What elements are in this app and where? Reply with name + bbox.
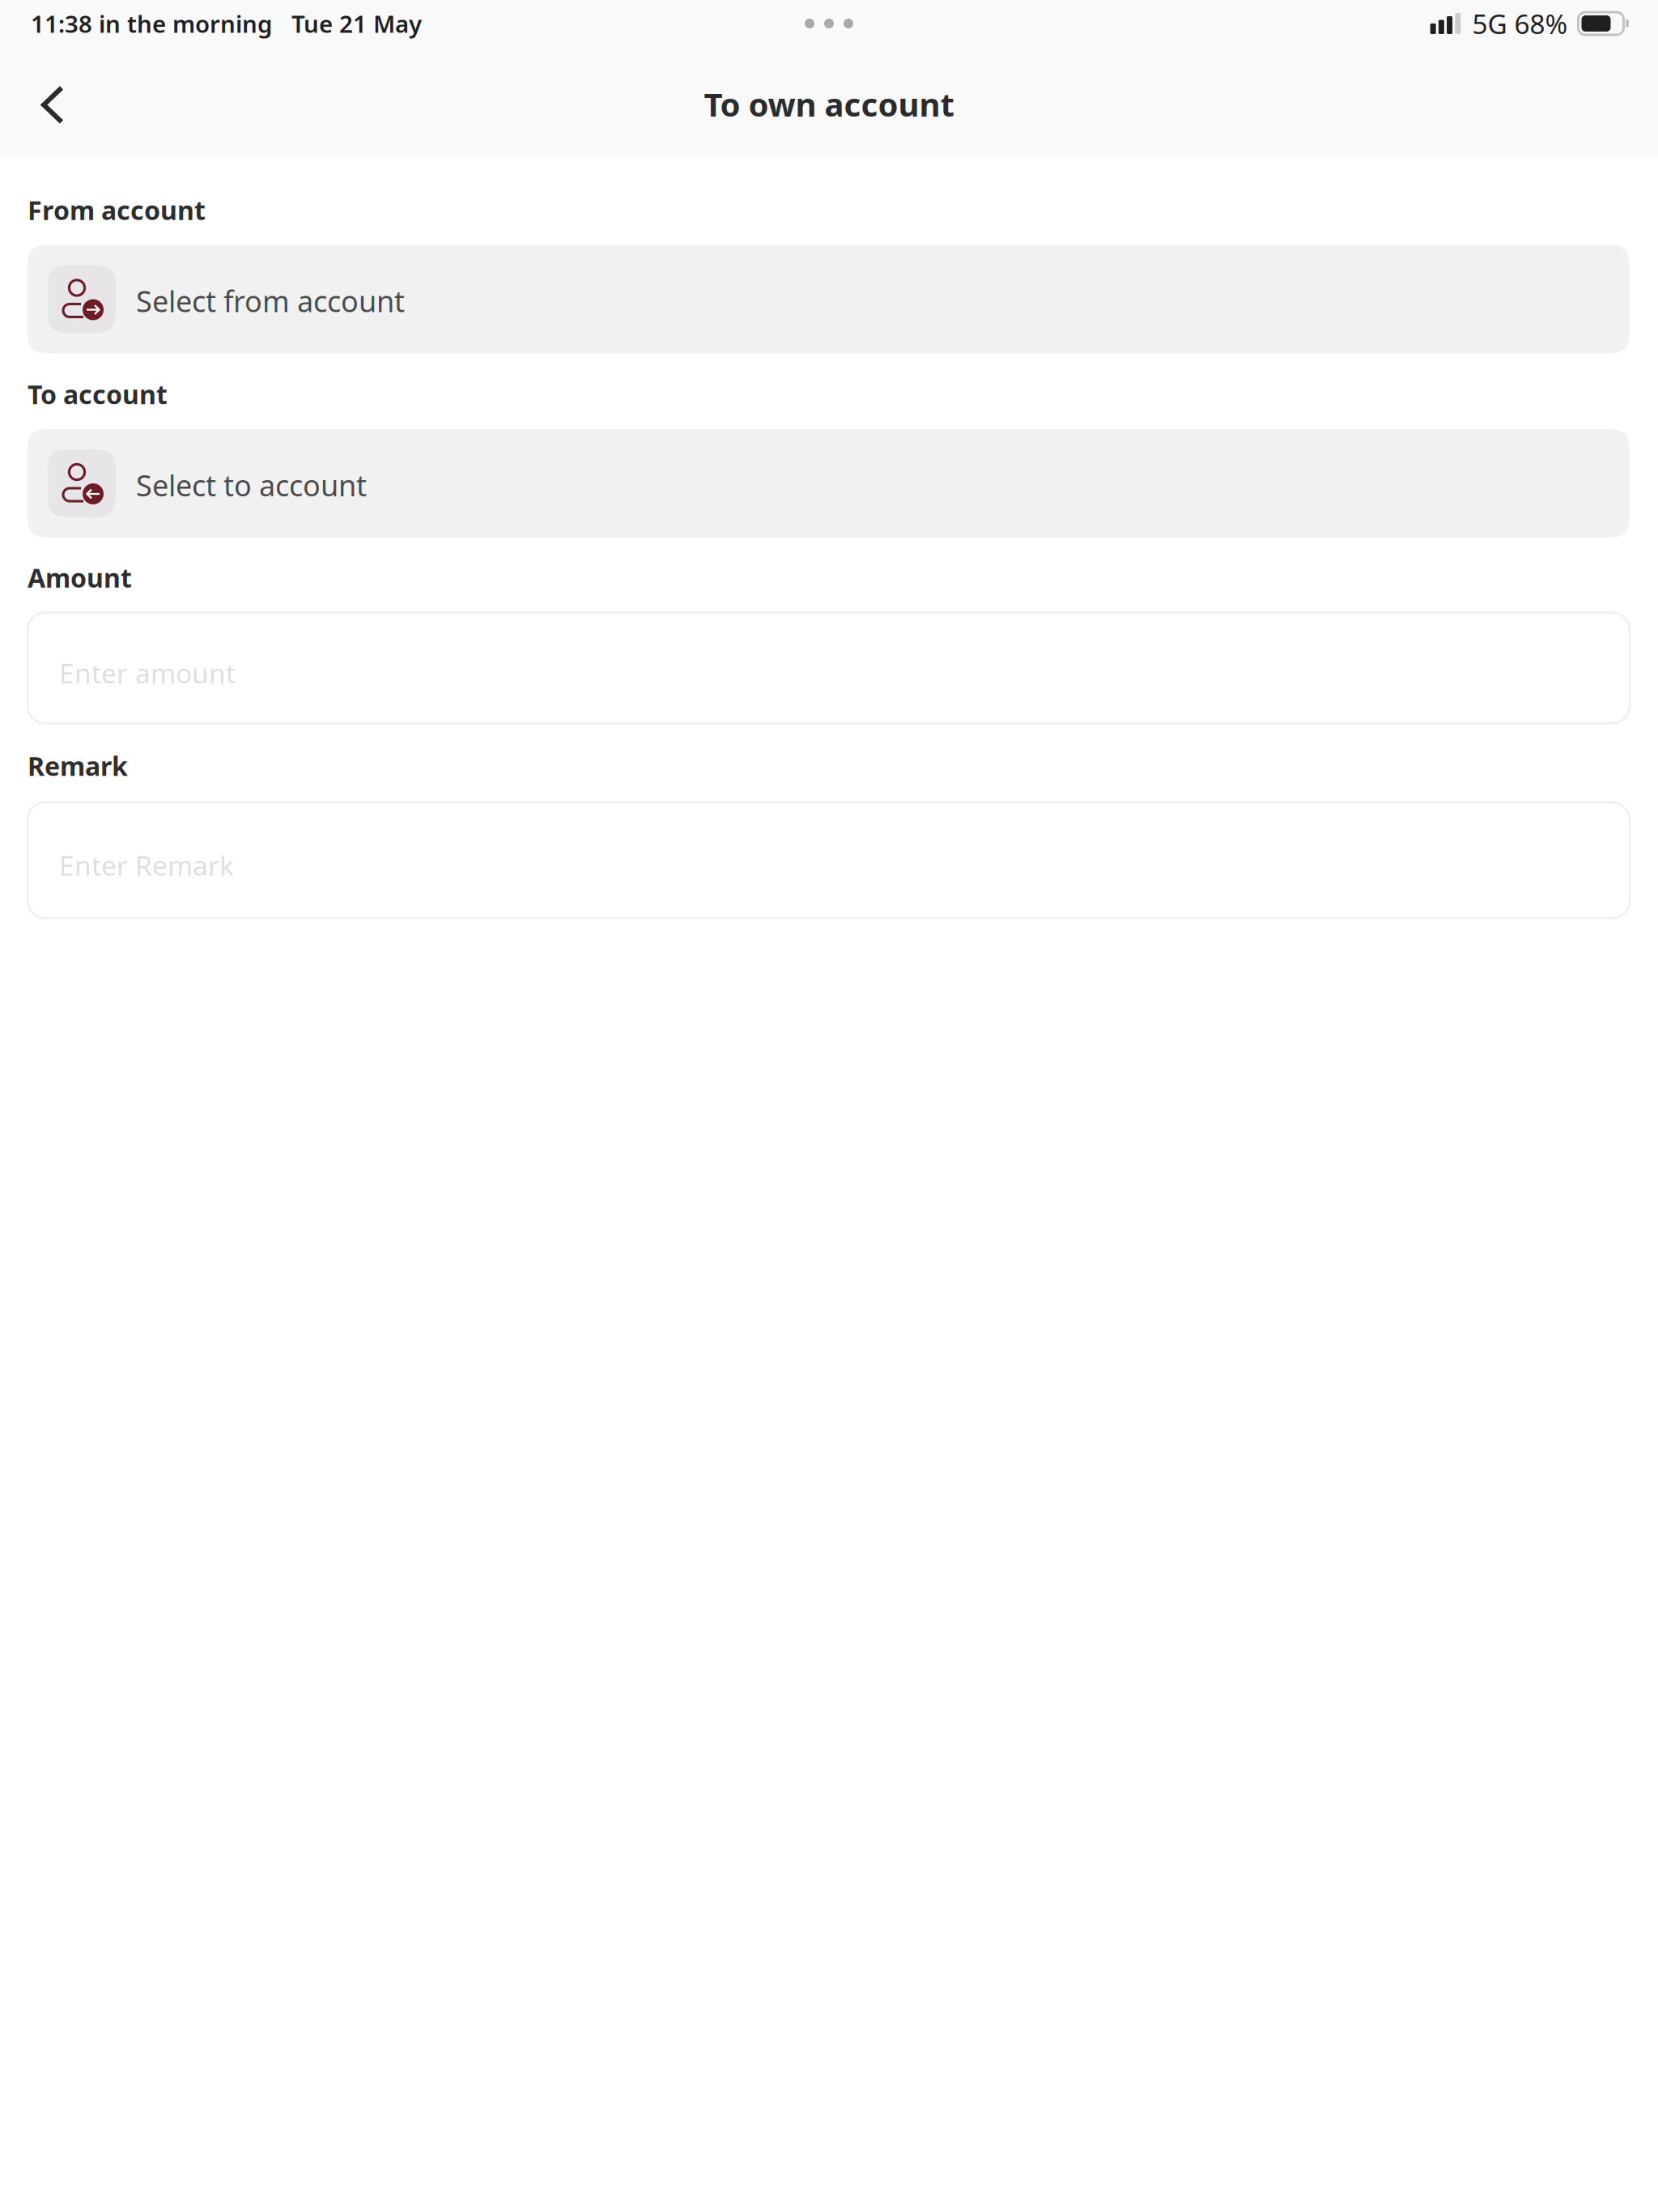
staticText: Amount xyxy=(28,560,132,595)
staticText: Select to account xyxy=(136,466,367,504)
button[interactable]: Select from account xyxy=(28,245,1630,353)
button[interactable]: Select to account xyxy=(28,429,1630,538)
staticText: To own account xyxy=(704,83,954,125)
staticText: 11:38 in the morning Tue 21 May xyxy=(31,8,422,39)
staticText: From account xyxy=(28,193,206,227)
button[interactable]: Back xyxy=(0,66,71,137)
staticText: Remark xyxy=(28,749,128,783)
staticText: To account xyxy=(28,377,168,411)
staticText: Select from account xyxy=(136,281,405,320)
staticText: Enter Remark xyxy=(59,847,234,883)
staticText: Enter amount xyxy=(59,655,236,691)
staticText: 5G 68% xyxy=(1472,6,1568,41)
